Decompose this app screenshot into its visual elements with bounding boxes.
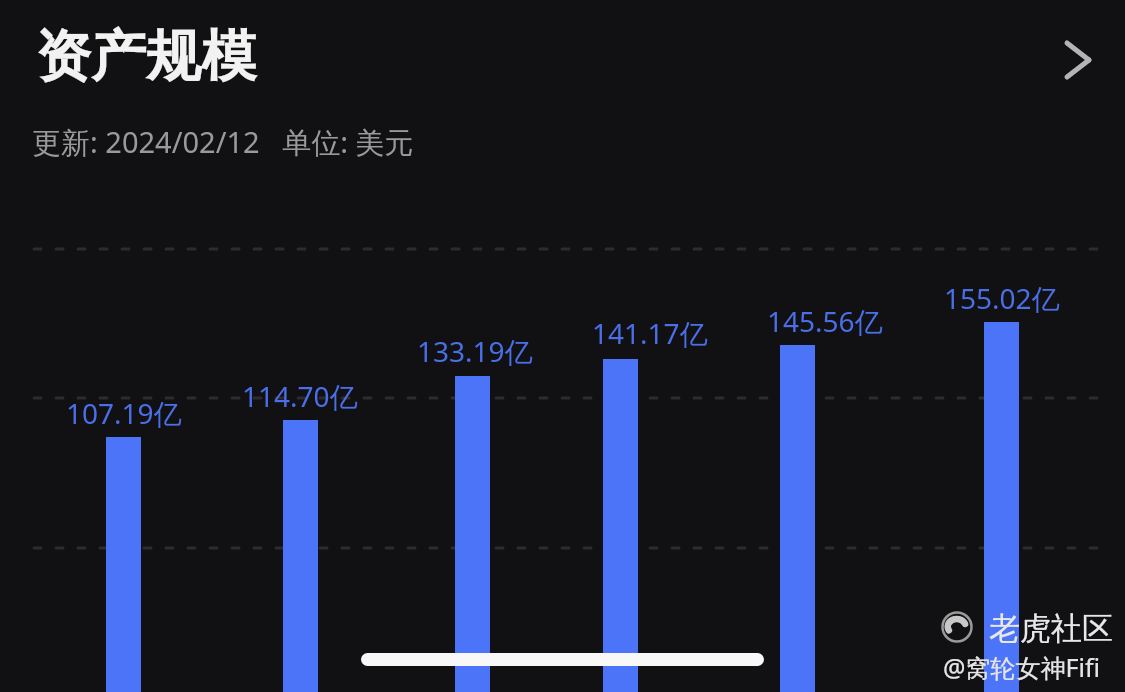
staticText: 155.02亿	[944, 279, 1060, 317]
staticText: 老虎社区	[989, 609, 1113, 648]
staticText: 107.19亿	[66, 394, 182, 432]
staticText: 114.70亿	[242, 377, 358, 415]
staticText: 145.56亿	[767, 302, 883, 340]
staticText: 资产规模	[36, 22, 256, 91]
button[interactable]: 资产规模	[0, 0, 1125, 108]
staticText: 更新: 2024/02/12 单位: 美元	[32, 122, 414, 162]
staticText: @窝轮女神Fifi	[943, 650, 1100, 684]
staticText: 133.19亿	[417, 332, 533, 370]
other: 查看详情	[1056, 34, 1102, 86]
staticText: 141.17亿	[592, 314, 708, 352]
